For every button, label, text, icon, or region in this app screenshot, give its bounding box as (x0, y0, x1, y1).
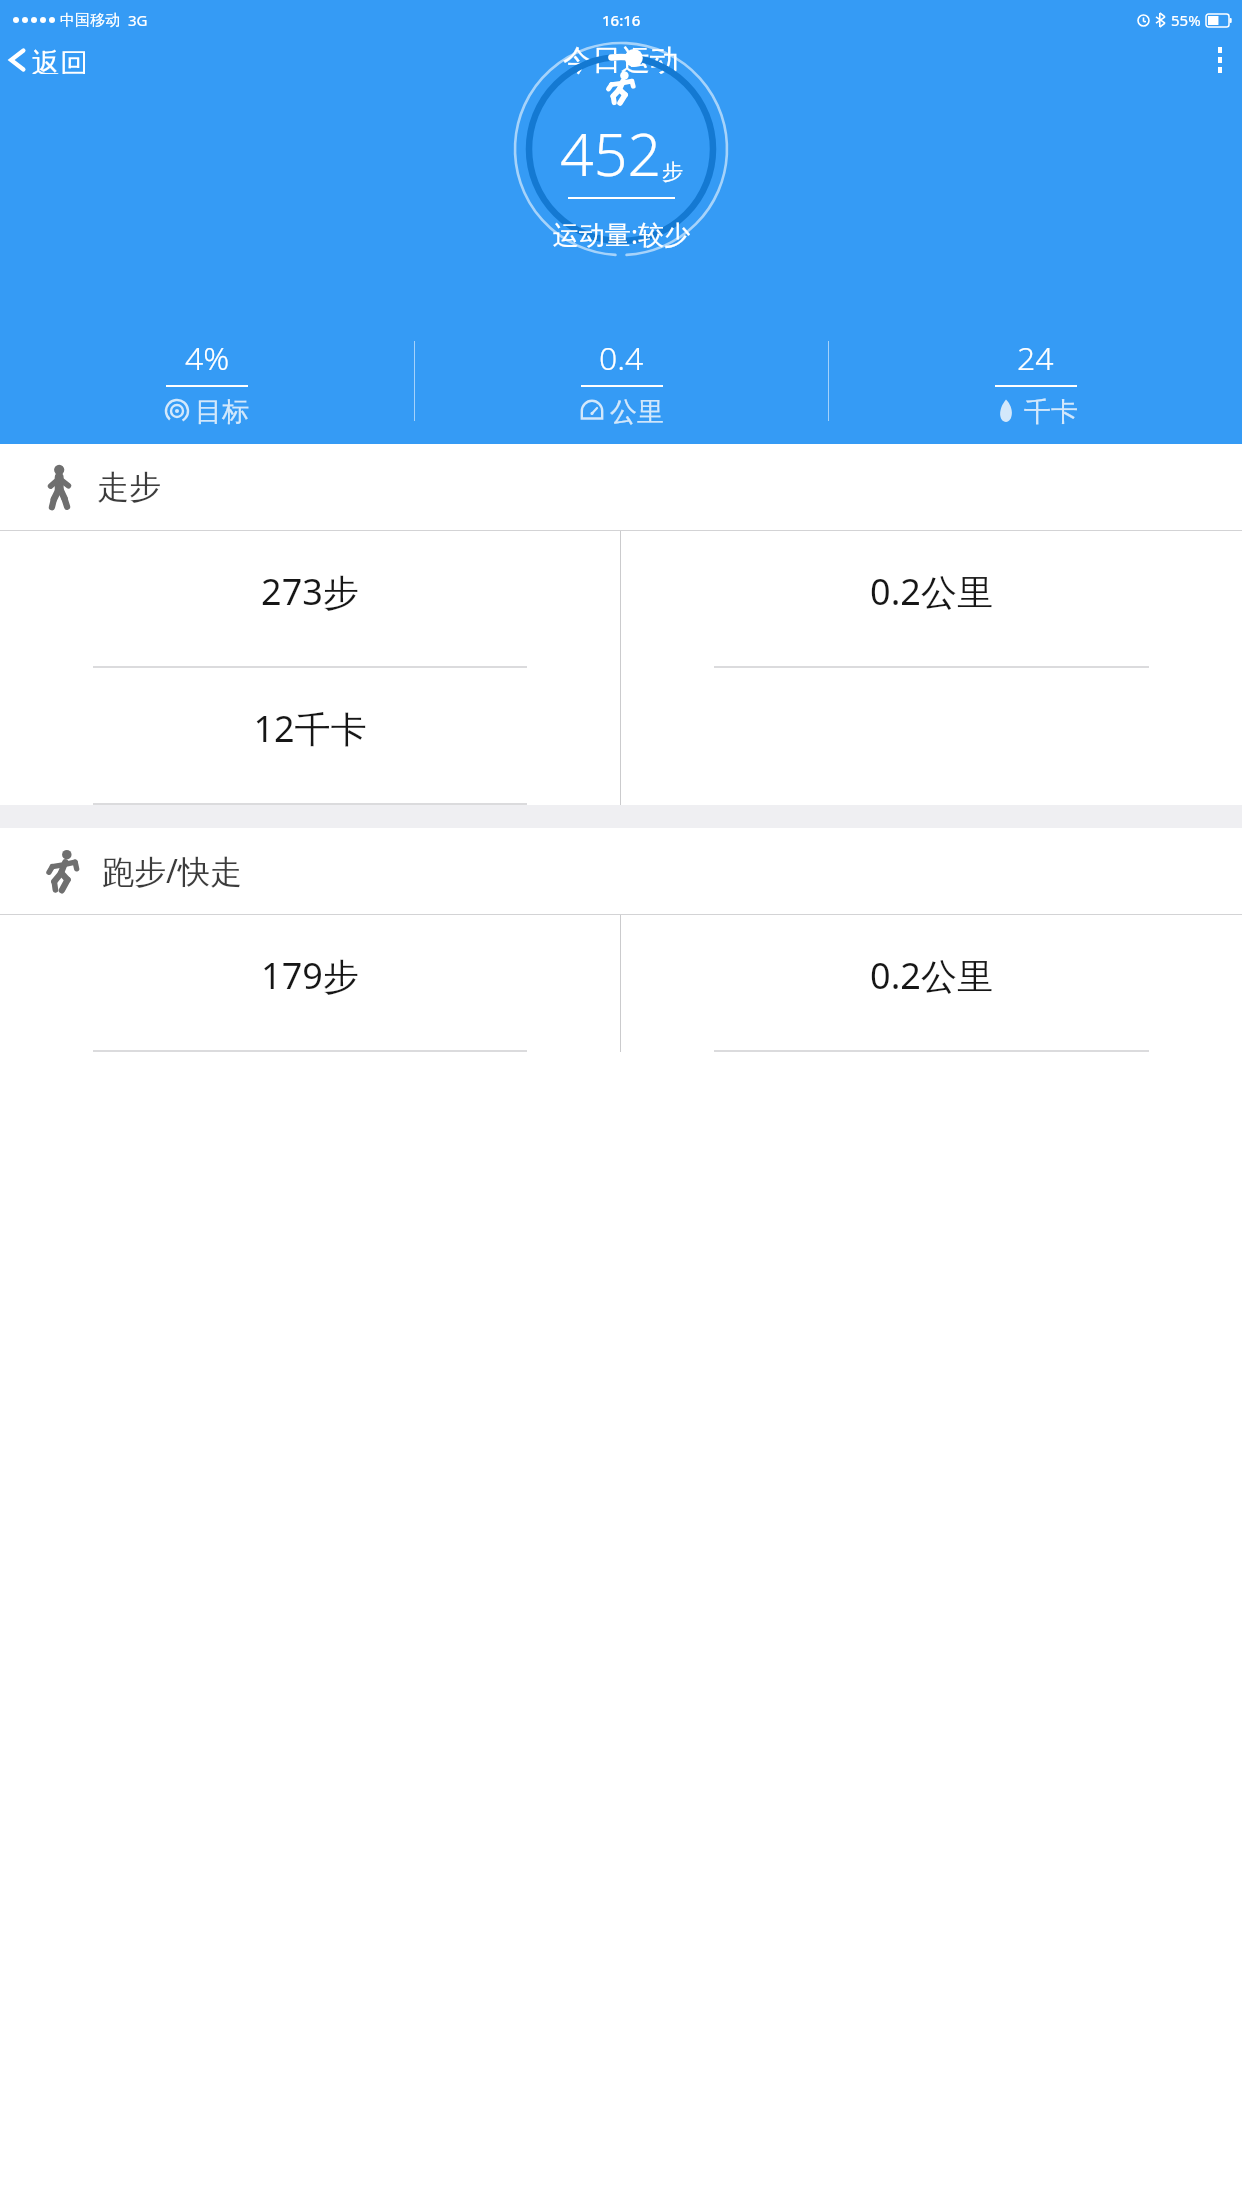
staticText: 返回 (32, 46, 88, 74)
button[interactable]: 0.4 (415, 332, 828, 430)
staticText: 179步 (261, 951, 359, 1000)
staticText: 步 (662, 159, 683, 185)
button[interactable]: 跑步/快走 (0, 828, 1242, 914)
button[interactable]: 0.2公里 (621, 915, 1242, 1052)
staticText: 452 (560, 113, 662, 193)
button[interactable]: 179步 (0, 915, 620, 1052)
staticText: 0.2公里 (870, 951, 993, 1000)
staticText: 55% (1171, 10, 1201, 30)
staticText: 16:16 (602, 10, 641, 30)
staticText: 3G (128, 10, 148, 30)
staticText: 今日运动 (563, 42, 679, 79)
staticText: 跑步/快走 (102, 849, 242, 893)
staticText: 走步 (97, 467, 161, 507)
button[interactable]: 走步 (0, 444, 1242, 530)
button[interactable]: 24 (829, 332, 1242, 430)
button[interactable]: 返回 (0, 40, 102, 80)
button[interactable]: 0.2公里 (621, 531, 1242, 668)
staticText: 中国移动 (60, 11, 120, 30)
staticText: 目标 (195, 395, 249, 426)
button[interactable]: 273步 (0, 531, 620, 668)
staticText: 公里 (610, 395, 664, 426)
staticText: 运动量:较少 (553, 216, 690, 252)
button[interactable]: More options (1198, 43, 1242, 77)
staticText: 24 (1017, 336, 1054, 380)
staticText: 273步 (261, 567, 359, 616)
staticText: 千卡 (1024, 395, 1078, 426)
staticText: 0.2公里 (870, 567, 993, 616)
staticText: 12千卡 (253, 704, 367, 753)
staticText: 0.4 (599, 336, 644, 380)
button[interactable]: 12千卡 (0, 668, 620, 805)
staticText: 4% (185, 336, 230, 380)
button[interactable]: 4% (0, 332, 414, 430)
